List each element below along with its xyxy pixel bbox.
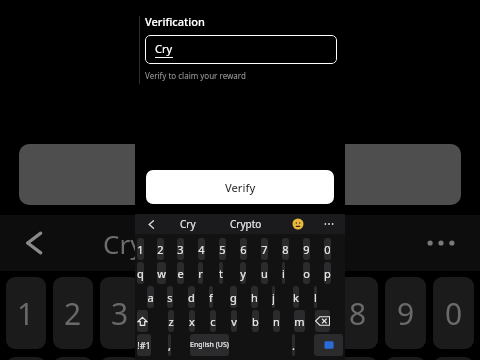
button[interactable]: More options — [321, 216, 337, 232]
staticText: w — [157, 266, 166, 281]
staticText: Verify to claim your reward — [145, 70, 246, 81]
staticText: 8 — [282, 242, 289, 257]
button[interactable]: 9 — [303, 238, 310, 260]
button[interactable]: d — [188, 286, 195, 308]
button[interactable]: v — [231, 310, 237, 332]
button[interactable]: 0 — [324, 238, 331, 260]
staticText: a — [147, 290, 154, 305]
button[interactable]: q — [137, 262, 144, 284]
staticText: 6 — [253, 293, 271, 334]
button[interactable]: 7 — [261, 238, 268, 260]
button[interactable]: h — [251, 286, 258, 308]
staticText: h — [251, 290, 258, 305]
button[interactable]: l — [314, 286, 317, 308]
button[interactable]: Cry — [145, 35, 337, 64]
button[interactable]: , — [168, 334, 171, 356]
button[interactable]: z — [168, 310, 174, 332]
button[interactable]: b — [252, 310, 259, 332]
button[interactable]: c — [210, 310, 216, 332]
staticText: i — [282, 266, 285, 281]
staticText: . — [292, 338, 295, 353]
button[interactable]: Back — [143, 216, 159, 232]
button[interactable]: i — [282, 262, 285, 284]
staticText: 8 — [349, 293, 367, 334]
button[interactable]: r — [198, 262, 203, 284]
staticText: r — [198, 266, 203, 281]
staticText: t — [219, 266, 223, 281]
staticText: Cry — [155, 41, 173, 56]
staticText: , — [168, 338, 171, 353]
button[interactable]: g — [230, 286, 237, 308]
button[interactable]: 3 — [177, 238, 184, 260]
staticText: s — [167, 290, 173, 305]
staticText: 0 — [445, 293, 463, 334]
button[interactable]: . — [292, 334, 295, 356]
staticText: 4 — [198, 242, 205, 257]
staticText: u — [261, 266, 268, 281]
button[interactable]: x — [189, 310, 195, 332]
staticText: d — [188, 290, 195, 305]
button[interactable]: 2 — [157, 238, 164, 260]
button[interactable]: m — [294, 310, 305, 332]
staticText: 1 — [137, 242, 144, 257]
button[interactable]: p — [324, 262, 331, 284]
staticText: 4 — [158, 293, 176, 334]
button[interactable]: Send — [314, 334, 343, 356]
button[interactable]: Emoji — [275, 214, 321, 234]
button[interactable]: a — [147, 286, 154, 308]
staticText: Crypto — [230, 217, 262, 231]
staticText: !#1 — [137, 339, 151, 351]
staticText: 7 — [301, 293, 319, 334]
button[interactable]: k — [293, 286, 299, 308]
staticText: Cry — [180, 217, 196, 231]
staticText: o — [303, 266, 310, 281]
button[interactable]: Backspace — [315, 310, 330, 332]
staticText: f — [209, 290, 213, 305]
button[interactable]: English (US) — [190, 334, 229, 356]
button[interactable]: 1 — [137, 238, 144, 260]
staticText: Cry — [103, 226, 144, 261]
staticText: 5 — [205, 293, 223, 334]
button[interactable]: Verify — [146, 170, 334, 204]
button[interactable]: n — [273, 310, 280, 332]
button[interactable]: e — [177, 262, 184, 284]
button[interactable]: 5 — [219, 238, 226, 260]
staticText: n — [273, 314, 280, 329]
staticText: v — [231, 314, 237, 329]
staticText: 1 — [17, 293, 35, 334]
button[interactable]: Shift — [137, 310, 148, 332]
button[interactable]: j — [272, 286, 275, 308]
staticText: 9 — [303, 242, 310, 257]
staticText: l — [314, 290, 317, 305]
staticText: 2 — [64, 293, 82, 334]
staticText: 9 — [397, 293, 415, 334]
staticText: English (US) — [190, 340, 229, 350]
staticText: 3 — [177, 242, 184, 257]
button[interactable]: f — [209, 286, 213, 308]
staticText: m — [294, 314, 305, 329]
button[interactable]: w — [157, 262, 166, 284]
staticText: j — [272, 290, 275, 305]
staticText: q — [137, 266, 144, 281]
button[interactable]: 8 — [282, 238, 289, 260]
staticText: 3 — [111, 293, 129, 334]
button[interactable]: 6 — [240, 238, 247, 260]
button[interactable]: s — [167, 286, 173, 308]
staticText: g — [230, 290, 237, 305]
staticText: Verification — [145, 14, 205, 29]
staticText: b — [252, 314, 259, 329]
staticText: 0 — [324, 242, 331, 257]
button[interactable]: Cry — [159, 214, 217, 234]
button[interactable]: 4 — [198, 238, 205, 260]
staticText: Verify — [225, 180, 256, 195]
button[interactable]: y — [240, 262, 246, 284]
staticText: y — [240, 266, 246, 281]
button[interactable]: Crypto — [217, 214, 275, 234]
button[interactable]: !#1 — [137, 334, 151, 356]
button[interactable]: o — [303, 262, 310, 284]
staticText: k — [293, 290, 299, 305]
button[interactable]: u — [261, 262, 268, 284]
staticText: 2 — [157, 242, 164, 257]
button[interactable]: t — [219, 262, 223, 284]
staticText: 5 — [219, 242, 226, 257]
